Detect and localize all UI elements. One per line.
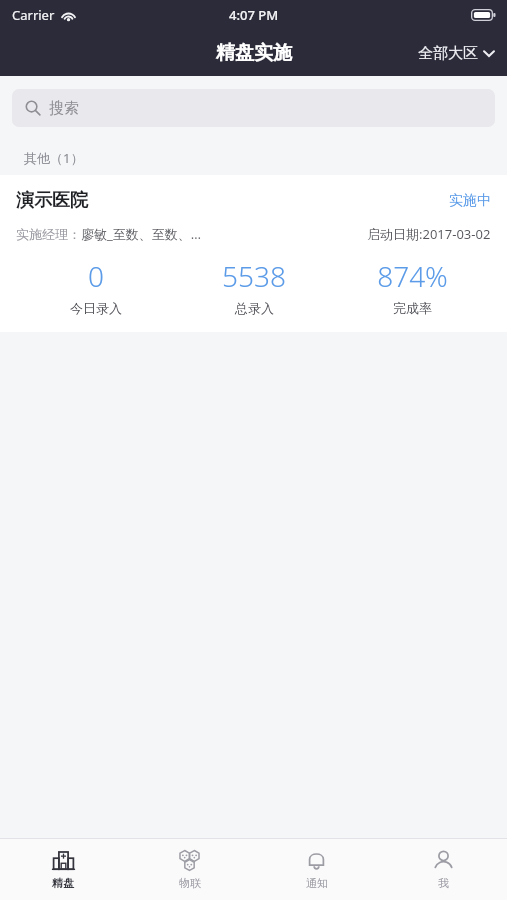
staticText: 0 [88, 257, 104, 295]
button[interactable]: 5538 [175, 257, 333, 316]
other: 通知 [305, 849, 328, 872]
staticText: 廖敏_至数、至数、… [81, 225, 202, 243]
other: Search [25, 100, 41, 116]
staticText: 实施中 [449, 192, 491, 210]
staticText: 全部大区 [418, 44, 478, 63]
other: 精盘 [52, 849, 75, 872]
staticText: 5538 [222, 257, 286, 295]
staticText: 物联 [179, 876, 201, 890]
staticText: 实施经理： [16, 226, 81, 242]
staticText: 4:07 PM [229, 6, 279, 24]
button[interactable]: 我 [380, 838, 507, 900]
button[interactable]: 通知 [253, 838, 380, 900]
staticText: Carrier [12, 6, 55, 24]
button[interactable]: 全部大区 [408, 38, 507, 69]
staticText: 完成率 [393, 300, 432, 316]
button[interactable]: 物联 [126, 838, 253, 900]
staticText: 启动日期:2017-03-02 [367, 225, 491, 243]
other: WiFi [61, 10, 76, 21]
button[interactable]: 演示医院 [0, 175, 507, 332]
other: 我 [432, 849, 455, 872]
staticText: 总录入 [235, 300, 274, 316]
staticText: 搜索 [49, 99, 79, 118]
staticText: 今日录入 [70, 300, 122, 316]
other: Battery [471, 9, 496, 21]
other: 物联 [178, 849, 201, 872]
button[interactable]: 874% [333, 257, 491, 316]
staticText: 其他（1） [24, 149, 84, 167]
button[interactable]: 0 [16, 257, 175, 316]
button[interactable]: 精盘 [0, 838, 126, 900]
button[interactable]: Search [12, 89, 495, 127]
staticText: 通知 [306, 876, 328, 890]
staticText: 精盘实施 [216, 41, 292, 65]
staticText: 我 [438, 876, 449, 890]
staticText: 精盘 [52, 876, 74, 890]
staticText: 874% [377, 257, 448, 295]
staticText: 演示医院 [16, 189, 88, 212]
